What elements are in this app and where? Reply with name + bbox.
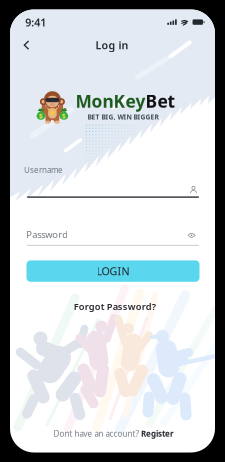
staticText: Log in bbox=[95, 38, 128, 52]
staticText: Password bbox=[26, 228, 68, 241]
button[interactable]: LOGIN bbox=[26, 260, 199, 282]
staticText: $ bbox=[62, 111, 66, 120]
staticText: BET BIG, WIN BIGGER bbox=[87, 112, 158, 121]
staticText: Dont have an account? bbox=[53, 428, 138, 439]
staticText: MonKey bbox=[75, 90, 145, 113]
staticText: $ bbox=[39, 111, 43, 120]
button[interactable]: Dont have an account? bbox=[53, 425, 174, 442]
staticText: 9:41 bbox=[25, 15, 46, 29]
button[interactable]: Back bbox=[15, 34, 37, 56]
staticText: Register bbox=[141, 428, 174, 439]
staticText: Bet bbox=[145, 90, 175, 113]
button[interactable]: Forgot Password? bbox=[70, 297, 160, 315]
staticText: Username bbox=[24, 165, 63, 175]
staticText: Forgot Password? bbox=[74, 300, 156, 312]
staticText: LOGIN bbox=[96, 264, 129, 278]
